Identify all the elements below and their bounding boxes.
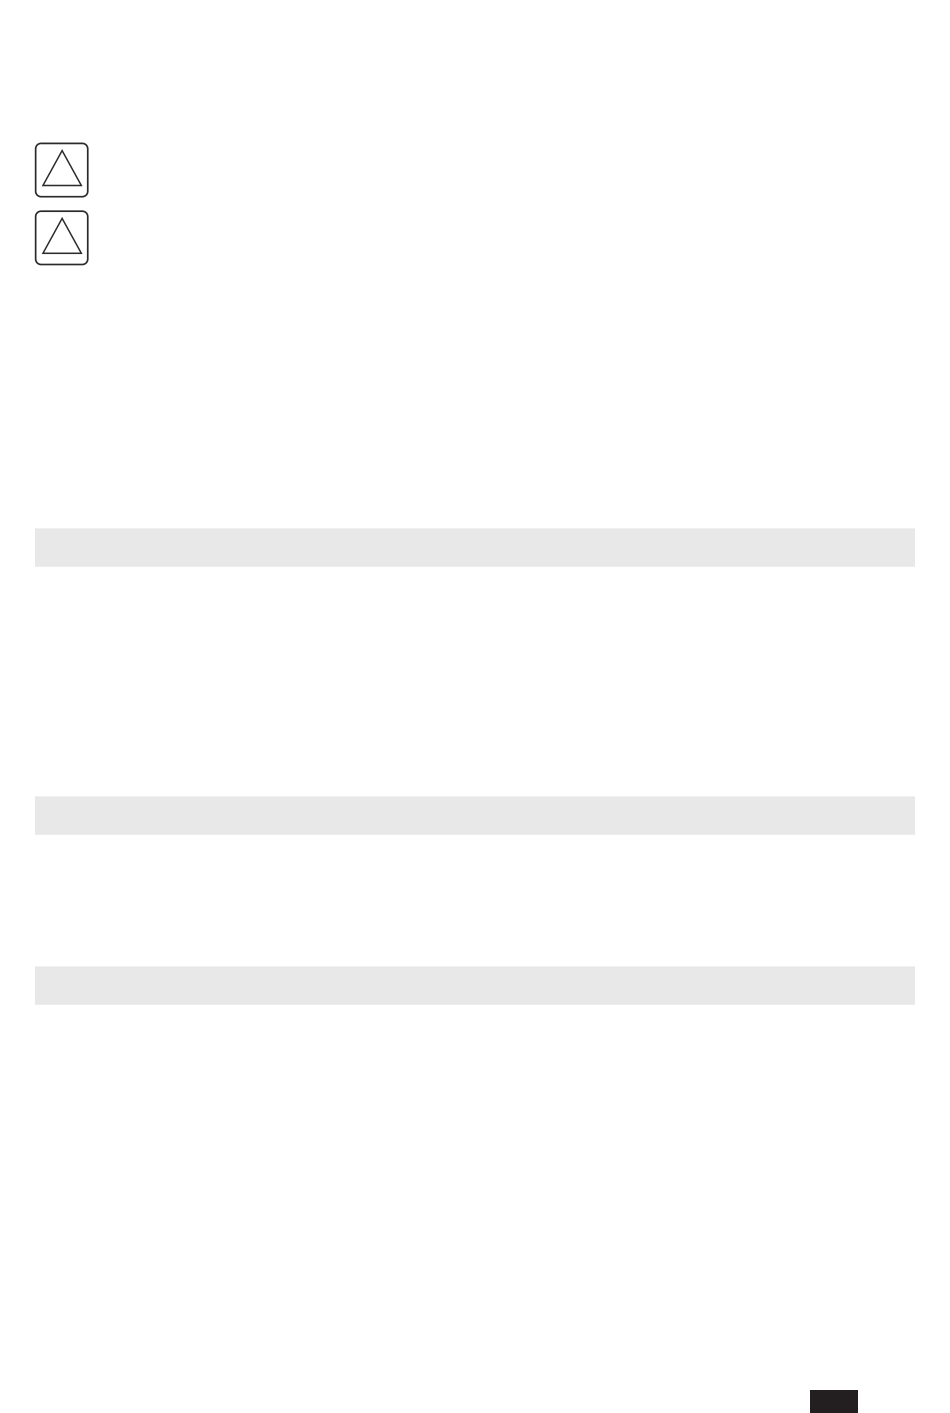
button[interactable]: Assistant bbox=[36, 211, 88, 264]
button[interactable]: You bbox=[36, 143, 88, 197]
